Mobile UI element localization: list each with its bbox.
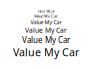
staticText: Value My Car xyxy=(34,13,58,19)
staticText: Value My Car xyxy=(30,19,61,26)
staticText: Value My Car xyxy=(37,10,54,13)
staticText: Value My Car xyxy=(13,45,79,59)
staticText: Value My Car xyxy=(22,34,70,45)
staticText: Value My Car xyxy=(25,26,67,34)
